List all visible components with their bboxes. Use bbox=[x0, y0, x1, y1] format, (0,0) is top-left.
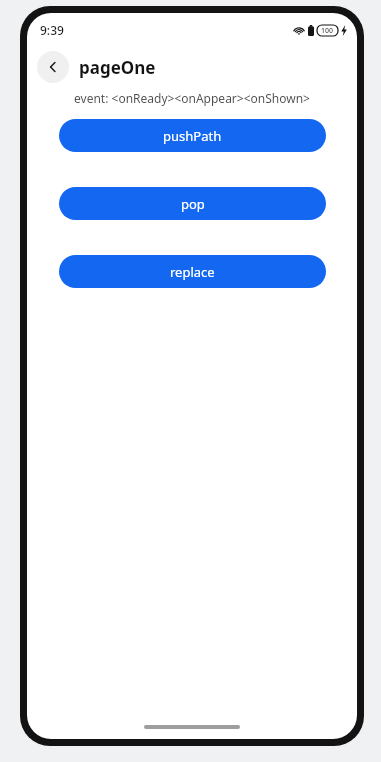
button[interactable]: Back bbox=[37, 51, 69, 83]
staticText: pop bbox=[181, 195, 205, 213]
staticText: event: <onReady><onAppear><onShown> bbox=[74, 90, 310, 106]
staticText: replace bbox=[170, 263, 215, 281]
staticText: pushPath bbox=[163, 127, 222, 145]
button[interactable]: pop bbox=[59, 187, 326, 220]
staticText: 9:39 bbox=[40, 22, 64, 38]
staticText: pageOne bbox=[79, 56, 156, 79]
button[interactable]: pushPath bbox=[59, 119, 326, 152]
staticText: 100 bbox=[321, 26, 334, 36]
button[interactable]: replace bbox=[59, 255, 326, 288]
